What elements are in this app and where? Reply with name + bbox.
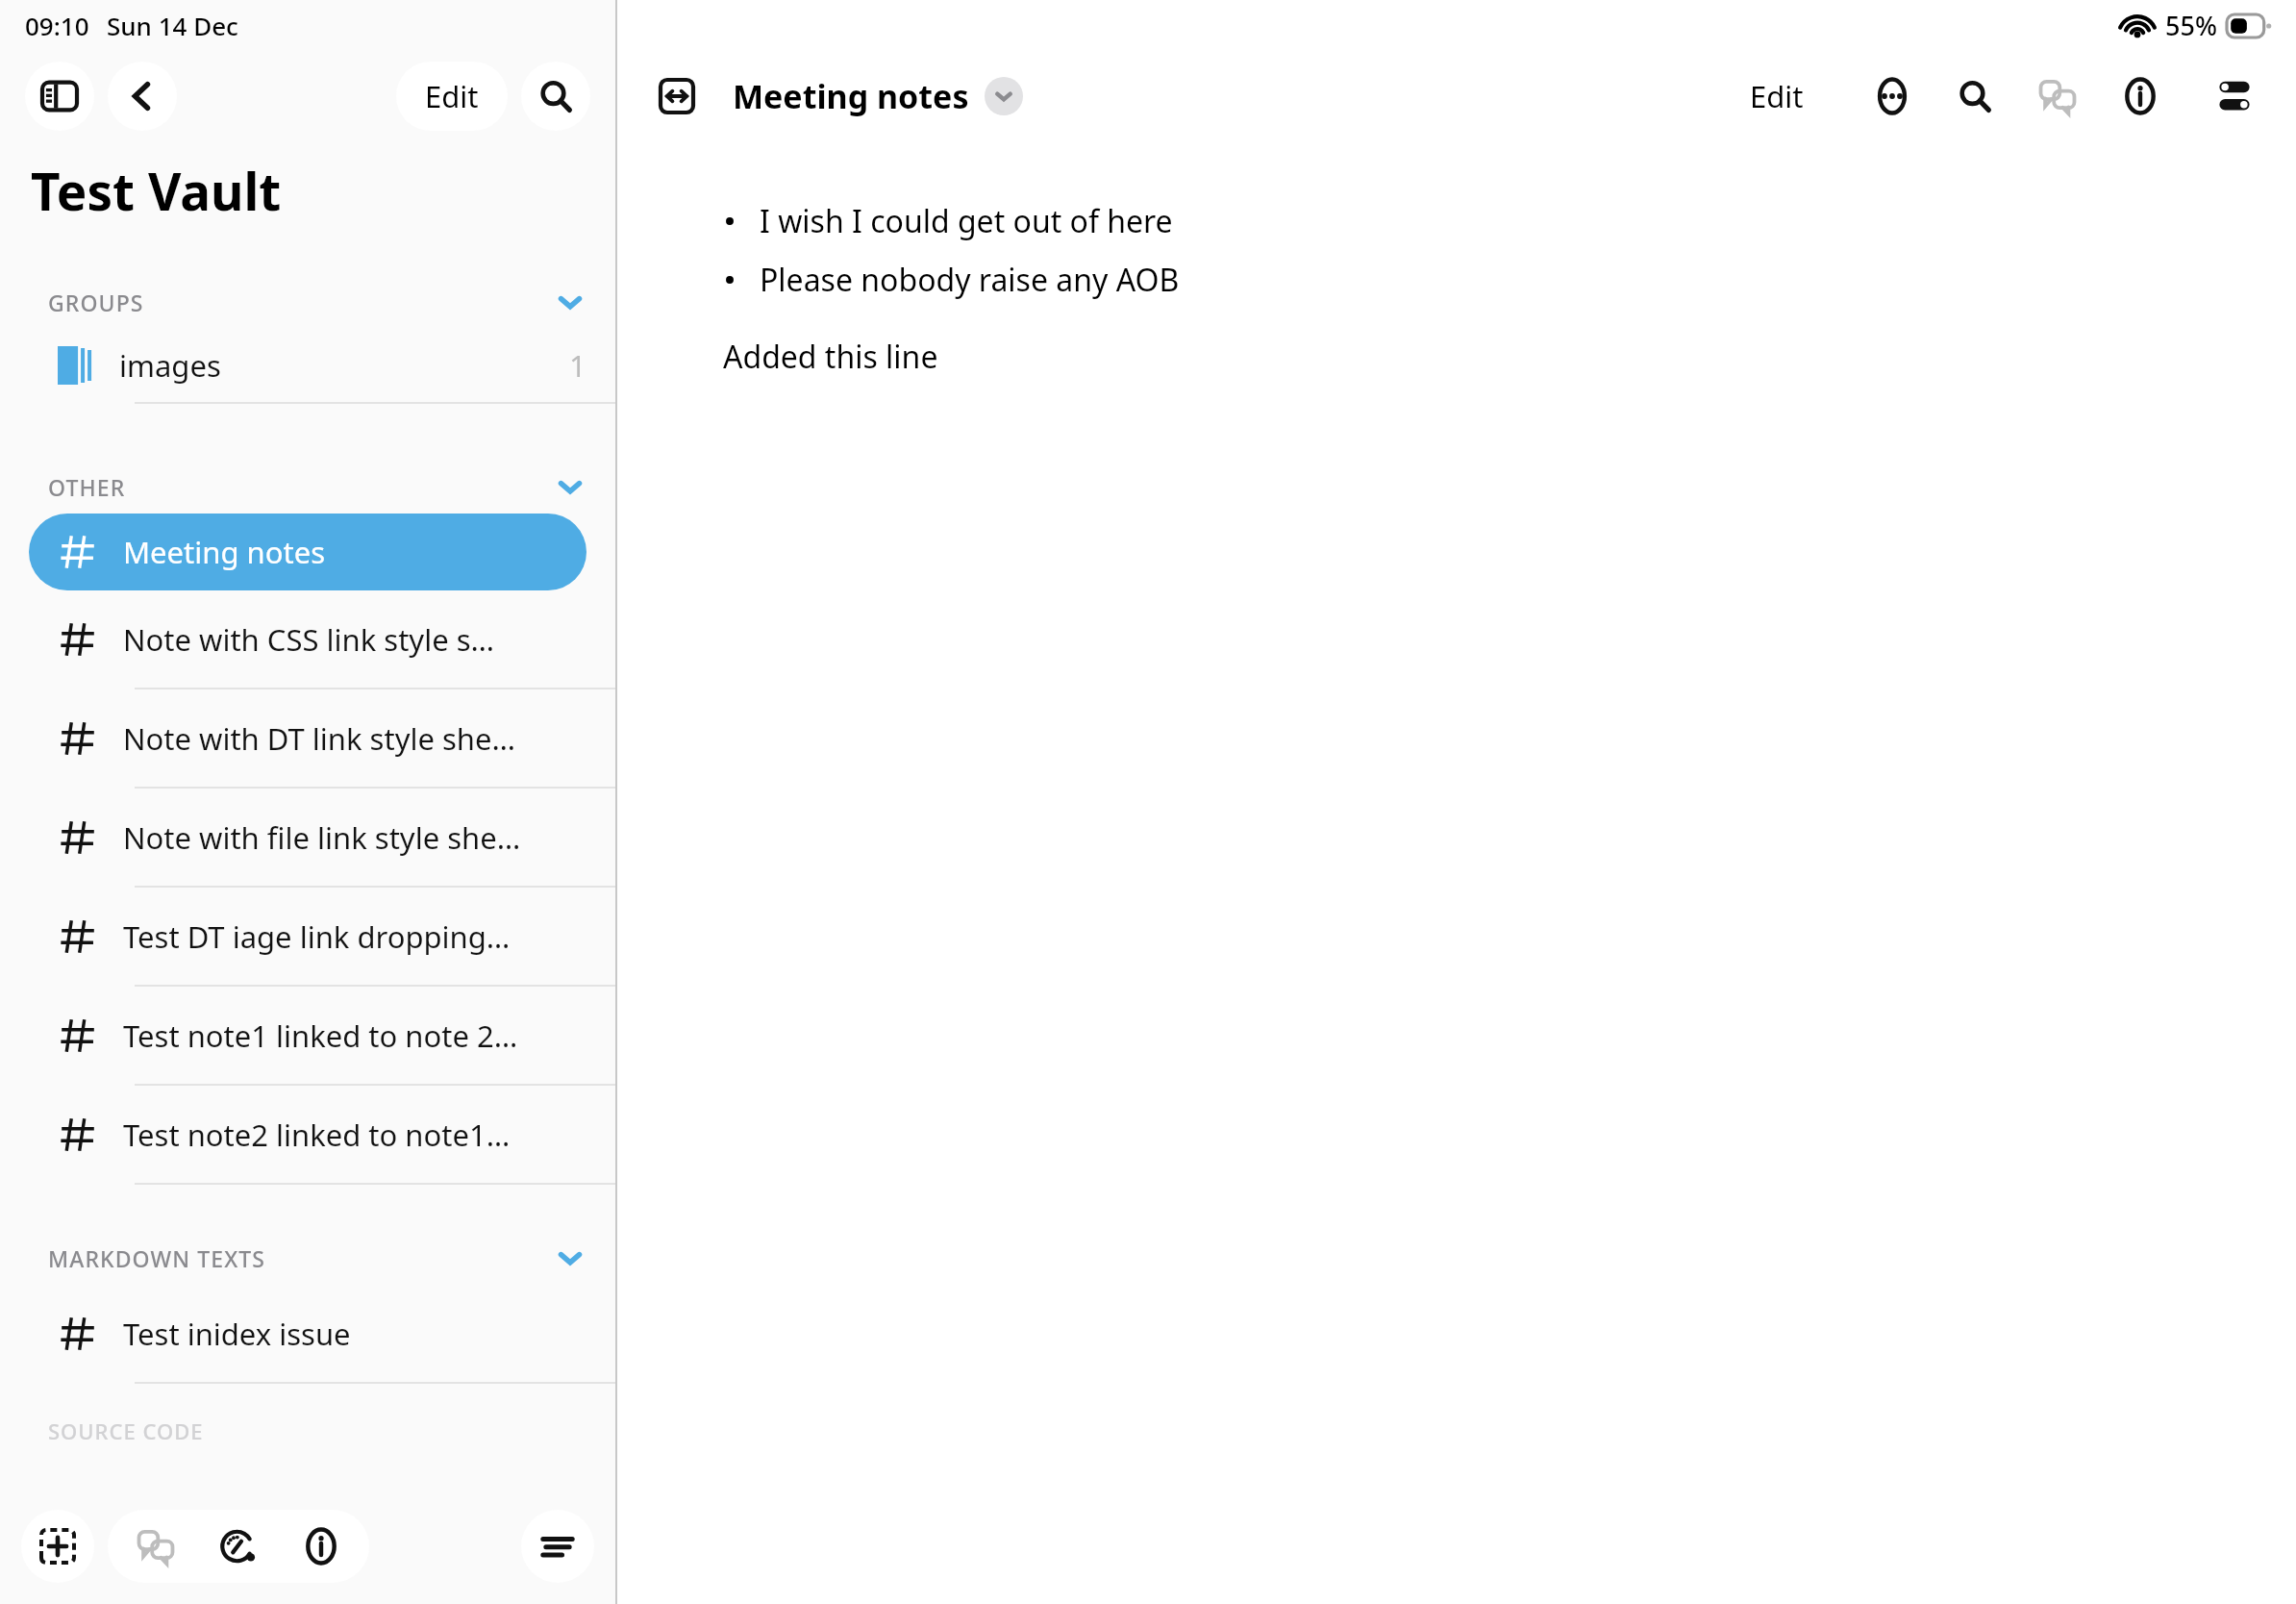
staticText: MARKDOWN TEXTS	[48, 1243, 266, 1273]
staticText: Edit	[425, 76, 479, 116]
staticText: Meeting notes	[733, 74, 969, 118]
button[interactable]: Test DT iage link dropping…	[0, 888, 615, 985]
button[interactable]: Note with CSS link style s…	[0, 590, 615, 688]
staticText: images	[119, 345, 221, 386]
staticText: Meeting notes	[123, 532, 325, 572]
button[interactable]: Info	[2109, 65, 2171, 127]
staticText: Note with CSS link style s…	[123, 619, 495, 660]
staticText: 1	[569, 345, 586, 386]
button[interactable]: images	[0, 329, 615, 402]
button[interactable]: Stats	[206, 1514, 271, 1579]
staticText: Test inidex issue	[123, 1314, 351, 1354]
button[interactable]: Search	[521, 62, 590, 131]
button[interactable]: Search	[1944, 65, 2006, 127]
staticText: Test note2 linked to note1…	[123, 1115, 511, 1155]
button[interactable]: Test inidex issue	[0, 1285, 615, 1382]
button[interactable]: Test note2 linked to note1…	[0, 1086, 615, 1183]
button[interactable]: More	[1861, 65, 1923, 127]
button[interactable]: Info	[288, 1514, 354, 1579]
button[interactable]: Edit	[1719, 62, 1834, 131]
staticText: I wish I could get out of here	[760, 200, 1173, 242]
button[interactable]: Edit	[396, 62, 508, 131]
button[interactable]: OTHER	[0, 460, 615, 514]
button[interactable]: Resize pane	[642, 62, 711, 131]
button[interactable]: Comments	[2027, 65, 2088, 127]
staticText: Test DT iage link dropping…	[123, 916, 511, 957]
button[interactable]: Back	[108, 62, 177, 131]
button[interactable]: Sidebar	[25, 62, 94, 131]
button[interactable]: GROUPS	[0, 275, 615, 329]
staticText: Please nobody raise any AOB	[760, 259, 1180, 301]
staticText: SOURCE CODE	[48, 1416, 204, 1445]
staticText: Note with DT link style she…	[123, 718, 515, 759]
staticText: GROUPS	[48, 288, 144, 317]
staticText: Test Vault	[31, 156, 282, 225]
button[interactable]: Note with file link style she…	[0, 789, 615, 886]
staticText: Added this line	[723, 336, 938, 378]
button[interactable]: Meeting notes	[29, 514, 586, 590]
staticText: 55%	[2165, 8, 2217, 43]
button[interactable]: Note with DT link style she…	[0, 689, 615, 787]
button[interactable]: MARKDOWN TEXTS	[0, 1231, 615, 1285]
button[interactable]: Test note1 linked to note 2…	[0, 987, 615, 1084]
button[interactable]: New note	[21, 1510, 94, 1583]
button[interactable]: Sort	[521, 1510, 594, 1583]
staticText: Edit	[1750, 76, 1804, 116]
button[interactable]: Comments	[123, 1514, 188, 1579]
staticText: OTHER	[48, 472, 126, 502]
staticText: Sun 14 Dec	[107, 9, 238, 42]
staticText: 09:10	[25, 9, 89, 42]
button[interactable]: Settings	[2198, 60, 2271, 133]
staticText: Test note1 linked to note 2…	[123, 1015, 518, 1056]
staticText: Note with file link style she…	[123, 817, 521, 858]
button[interactable]: Note options	[985, 77, 1023, 115]
